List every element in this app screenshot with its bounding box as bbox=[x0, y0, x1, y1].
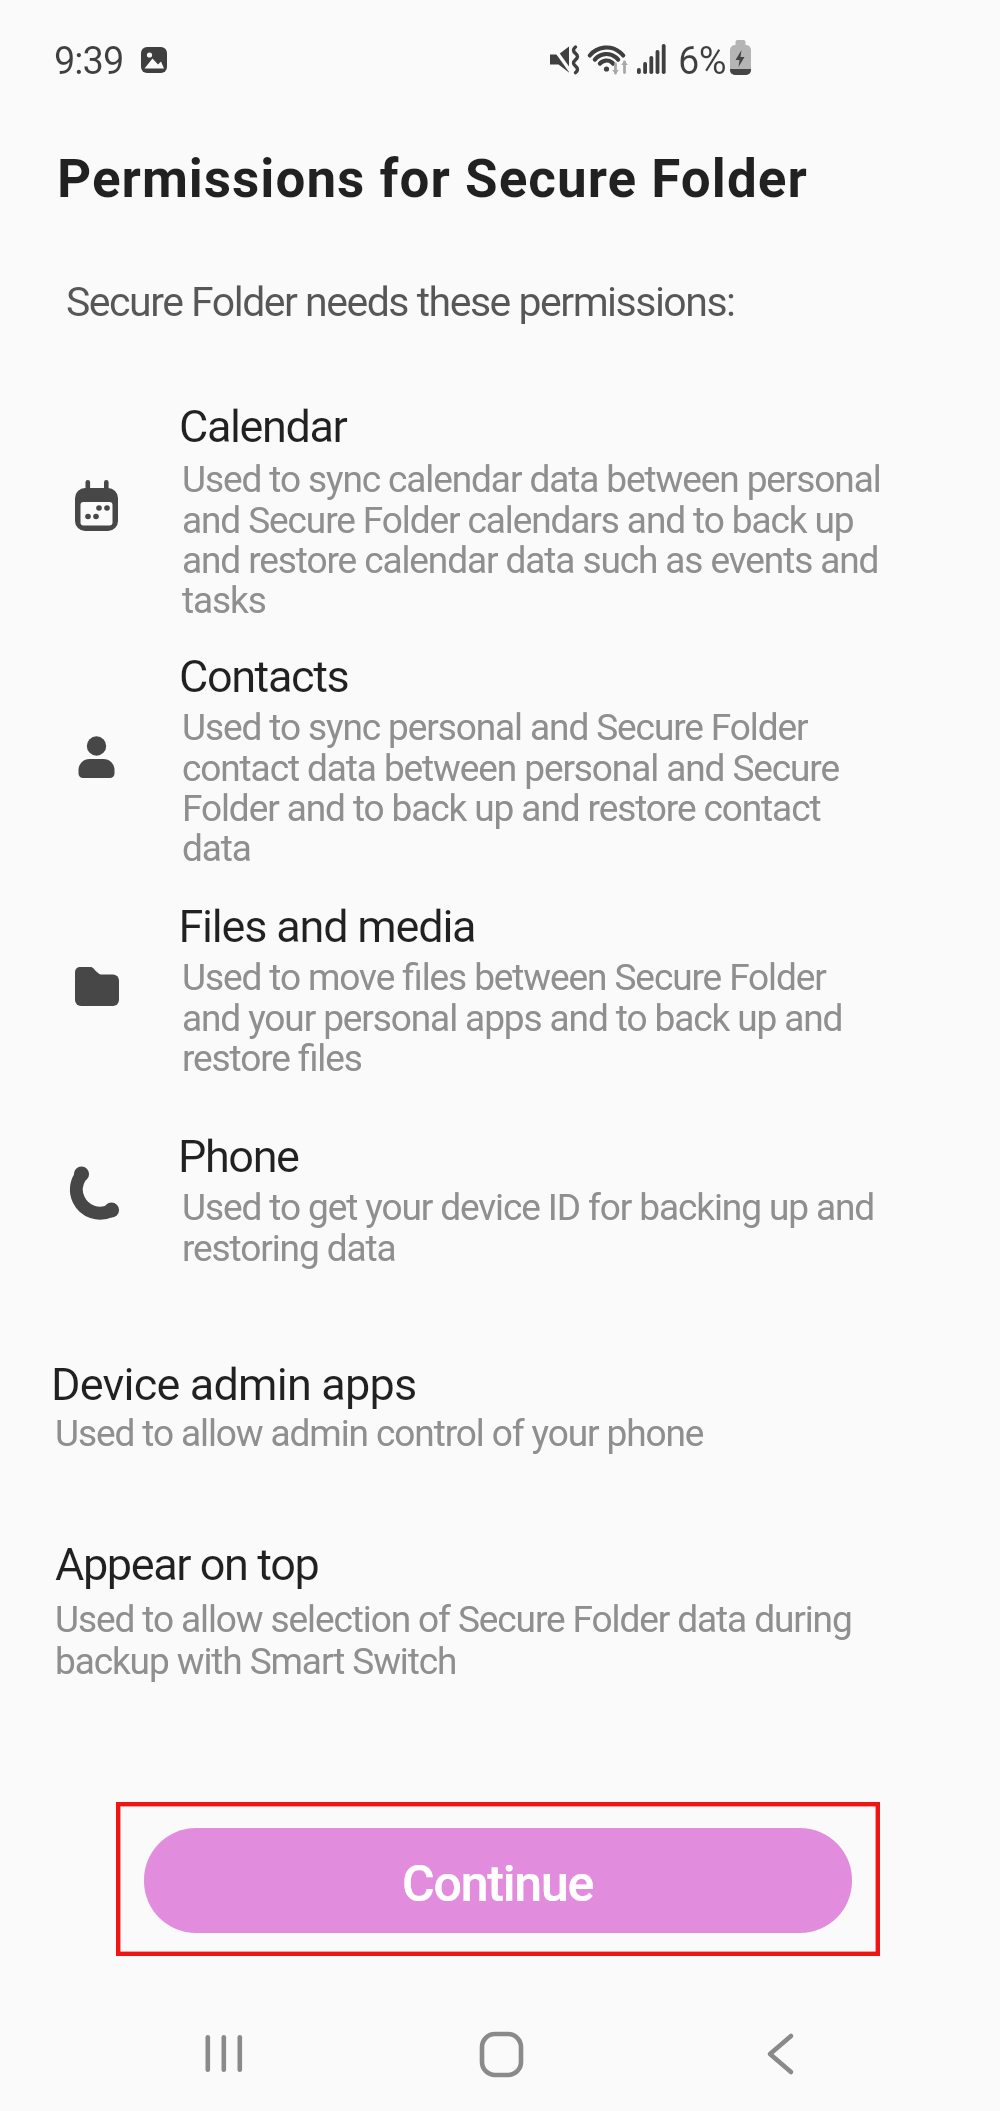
staticText: Used to get your device ID for backing u… bbox=[182, 1186, 875, 1270]
staticText: Secure Folder needs these permissions: bbox=[66, 278, 735, 326]
staticText: Used to allow selection of Secure Folder… bbox=[55, 1598, 852, 1683]
button[interactable] bbox=[736, 2010, 824, 2098]
staticText: Used to allow admin control of your phon… bbox=[55, 1412, 704, 1455]
staticText: Permissions for Secure Folder bbox=[57, 148, 808, 210]
staticText: Phone bbox=[178, 1130, 299, 1183]
staticText: Continue bbox=[402, 1855, 594, 1914]
staticText: Used to sync calendar data between perso… bbox=[182, 458, 881, 622]
staticText: Used to sync personal and Secure Folder … bbox=[182, 706, 839, 870]
staticText: Files and media bbox=[179, 900, 476, 953]
staticText: Appear on top bbox=[55, 1538, 319, 1591]
button[interactable] bbox=[457, 2010, 545, 2098]
staticText: Used to move files between Secure Folder… bbox=[182, 956, 843, 1080]
staticText: 9:39 bbox=[54, 39, 124, 84]
button[interactable]: Continue bbox=[144, 1828, 852, 1933]
staticText: Contacts bbox=[179, 650, 349, 703]
staticText: Device admin apps bbox=[51, 1358, 417, 1411]
staticText: Calendar bbox=[179, 400, 347, 453]
button[interactable] bbox=[177, 2009, 265, 2097]
staticText: 6% bbox=[678, 39, 727, 84]
